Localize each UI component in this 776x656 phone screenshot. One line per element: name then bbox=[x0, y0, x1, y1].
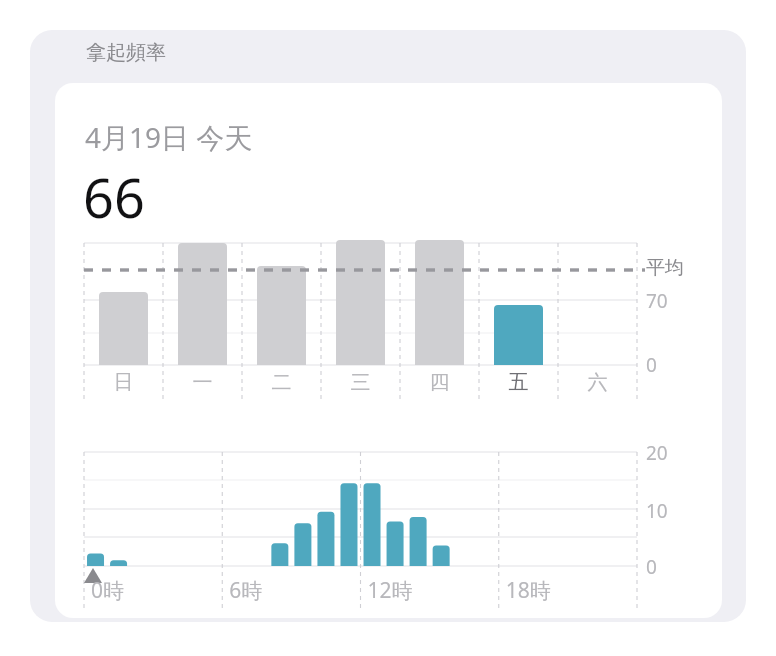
button[interactable] bbox=[55, 83, 722, 618]
button[interactable] bbox=[30, 30, 746, 622]
